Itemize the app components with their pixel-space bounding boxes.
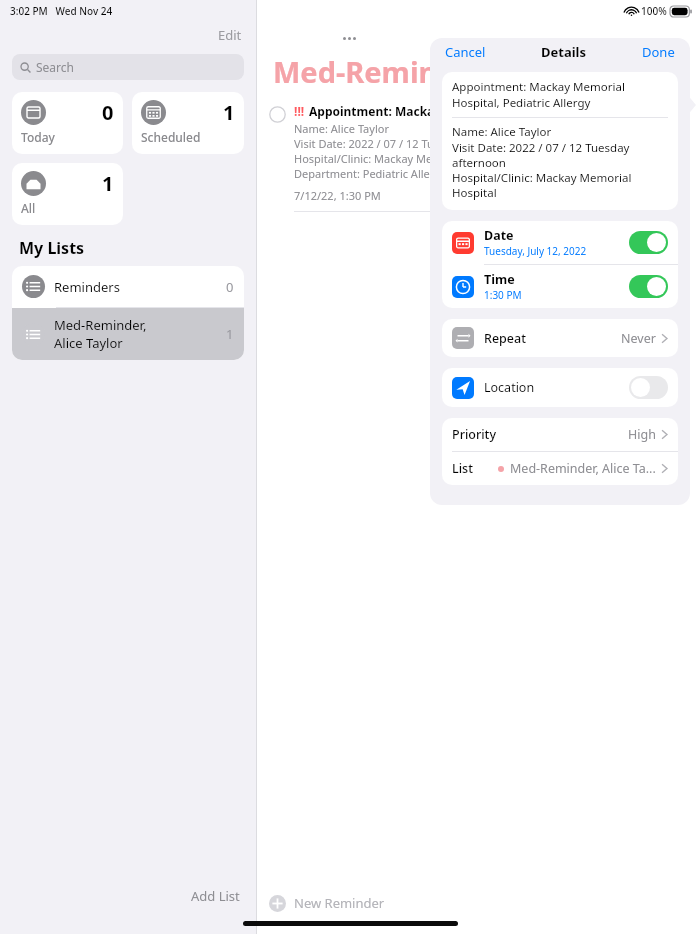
button[interactable]: Priority (442, 418, 678, 451)
staticText: 3:02 PM Wed Nov 24 (10, 4, 113, 18)
staticText: New Reminder (294, 894, 385, 912)
button[interactable]: Off (629, 376, 668, 399)
staticText: Today (21, 129, 55, 145)
button[interactable]: Edit (214, 24, 246, 46)
staticText: Med-Reminder, (54, 316, 147, 334)
button[interactable]: More options (338, 27, 360, 49)
staticText: Appointment: Mackay Memorial Hospital (309, 103, 555, 119)
staticText: Details (541, 43, 586, 61)
button[interactable]: New Reminder (257, 894, 700, 934)
staticText: Never (621, 330, 656, 347)
button[interactable]: On (629, 231, 668, 254)
staticText: Med-Reminder, Alice Ta... (510, 460, 656, 477)
button[interactable]: Reminders (12, 266, 244, 307)
staticText: 1 (223, 99, 235, 126)
staticText: Name: Alice Taylor (294, 121, 389, 136)
staticText: All (21, 200, 36, 216)
staticText: Done (642, 43, 675, 61)
button[interactable]: Date (442, 221, 678, 264)
button[interactable]: Add List (187, 884, 244, 908)
button[interactable]: Med-Reminder, (12, 308, 244, 360)
staticText: Reminders (54, 278, 120, 296)
staticText: 100% (641, 4, 667, 18)
staticText: Time (484, 271, 515, 288)
staticText: Hospital/Clinic: Mackay Memorial Hospita… (294, 151, 512, 166)
button[interactable]: Cancel (442, 41, 489, 63)
staticText: Date (484, 227, 514, 244)
staticText: Tuesday, July 12, 2022 (484, 244, 587, 258)
staticText: !!! (294, 103, 305, 119)
staticText: High (628, 426, 656, 443)
staticText: Add List (191, 887, 240, 905)
staticText: Name: Alice Taylor Visit Date: 2022 / 07… (452, 124, 668, 204)
button[interactable]: On (629, 275, 668, 298)
staticText: 0 (226, 278, 234, 296)
button[interactable]: !!! (257, 101, 700, 212)
staticText: Repeat (484, 330, 526, 347)
staticText: Cancel (445, 43, 486, 61)
button[interactable]: 0 (12, 92, 123, 154)
staticText: 1:30 PM (484, 288, 522, 302)
button[interactable]: Time (442, 265, 678, 308)
staticText: 7/12/22, 1:30 PM (294, 188, 381, 203)
staticText: Med-Reminder (273, 52, 487, 91)
staticText: Location (484, 379, 535, 396)
button[interactable]: 1 (12, 163, 123, 225)
button[interactable]: Repeat (442, 319, 678, 357)
button[interactable]: 1 (132, 92, 244, 154)
staticText: My Lists (19, 237, 85, 259)
button[interactable]: List (442, 452, 678, 485)
staticText: Priority (452, 426, 496, 443)
staticText: 1 (102, 170, 114, 197)
button[interactable]: Done (639, 41, 678, 63)
button[interactable]: Search (12, 54, 244, 80)
staticText: Alice Taylor (54, 334, 123, 352)
staticText: Visit Date: 2022 / 07 / 12 Tuesday after… (294, 136, 519, 151)
staticText: List (452, 460, 473, 477)
staticText: Scheduled (141, 129, 201, 145)
staticText: Department: Pediatric Allergy (294, 166, 447, 181)
staticText: Appointment: Mackay Memorial Hospital, P… (452, 79, 668, 110)
staticText: 0 (102, 99, 114, 126)
button[interactable]: Location (442, 368, 678, 407)
staticText: 1 (226, 325, 234, 343)
button[interactable]: Appointment: Mackay Memorial Hospital, P… (442, 72, 678, 210)
staticText: Edit (218, 26, 242, 44)
staticText: Search (36, 59, 74, 75)
